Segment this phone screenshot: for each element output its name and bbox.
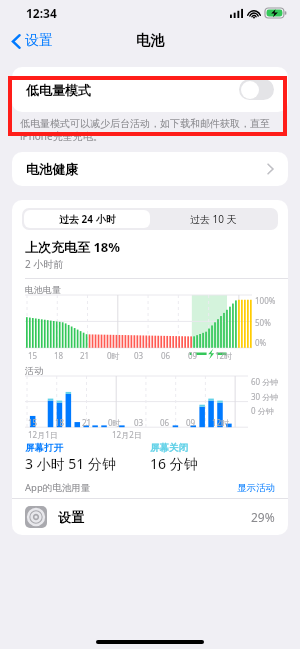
staticText: 60 分钟	[251, 376, 279, 387]
staticText: 29%	[251, 509, 275, 525]
button[interactable]: 低电量模式	[12, 67, 288, 112]
staticText: 06	[161, 350, 171, 361]
staticText: App的电池用量	[25, 481, 91, 494]
staticText: 0时	[108, 417, 121, 428]
staticText: 100%	[255, 295, 276, 306]
staticText: 0%	[255, 337, 267, 348]
staticText: 屏幕关闭	[150, 442, 188, 454]
staticText: 上次充电至 18%	[25, 238, 120, 256]
staticText: 09	[188, 350, 198, 361]
staticText: 50%	[255, 317, 271, 328]
button[interactable]: 设置	[8, 29, 57, 53]
staticText: 03	[134, 417, 144, 428]
staticText: 12月2日	[112, 429, 142, 440]
staticText: 设置	[25, 32, 53, 50]
staticText: 电池电量	[25, 284, 61, 295]
staticText: 0时	[107, 350, 120, 361]
staticText: 低电量模式	[26, 82, 91, 98]
staticText: 过去 10 天	[190, 212, 237, 226]
staticText: 12:34	[26, 5, 57, 21]
staticText: 21	[80, 350, 90, 361]
staticText: 09	[186, 417, 196, 428]
staticText: 电池健康	[26, 161, 78, 177]
staticText: 18	[54, 350, 64, 361]
staticText: 设置	[58, 509, 84, 525]
staticText: 06	[160, 417, 170, 428]
staticText: 0 分钟	[251, 405, 274, 416]
button[interactable]: 电池健康	[12, 152, 288, 186]
staticText: 电池	[136, 32, 164, 50]
staticText: 15	[28, 350, 38, 361]
staticText: 16 分钟	[150, 454, 198, 473]
staticText: 15	[28, 417, 38, 428]
button[interactable]: 过去 10 天	[150, 210, 276, 228]
staticText: 低电量模式可以减少后台活动，如下载和邮件获取，直至 iPhone完全充电。	[20, 117, 270, 143]
staticText: 30 分钟	[251, 391, 279, 402]
staticText: 2 小时前	[25, 257, 64, 271]
other: 打开电池健康	[267, 163, 274, 175]
staticText: 12时	[212, 417, 230, 428]
button[interactable]: 设置	[12, 499, 288, 535]
button[interactable]: 显示活动	[237, 482, 275, 494]
staticText: 活动	[25, 365, 43, 376]
staticText: 3 小时 51 分钟	[25, 454, 116, 473]
staticText: 12时	[215, 350, 233, 361]
staticText: 12月1日	[28, 429, 58, 440]
button[interactable]	[239, 79, 274, 100]
staticText: 03	[134, 350, 144, 361]
staticText: 过去 24 小时	[59, 212, 116, 226]
staticText: 18	[55, 417, 65, 428]
staticText: 屏幕打开	[25, 442, 63, 454]
staticText: 21	[82, 417, 92, 428]
button[interactable]: 过去 24 小时	[24, 210, 150, 228]
staticText: 显示活动	[237, 482, 275, 494]
